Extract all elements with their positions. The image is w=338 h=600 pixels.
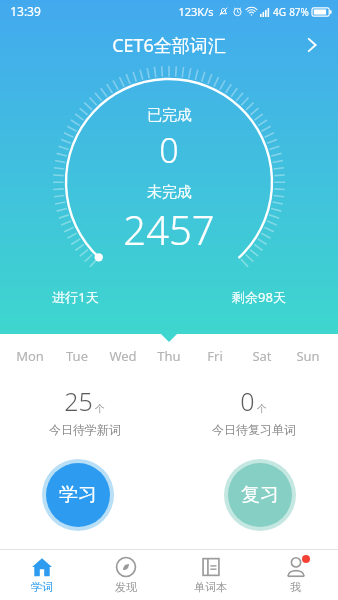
staticText: 123K/s	[178, 4, 214, 19]
button[interactable]: 25	[0, 384, 169, 437]
staticText: 个	[257, 402, 267, 415]
staticText: 单词本	[194, 580, 227, 594]
staticText: Sat	[252, 347, 272, 365]
button[interactable]: Fri	[195, 347, 235, 365]
button[interactable]: 复习	[224, 459, 296, 531]
button[interactable]: 学词	[0, 550, 84, 600]
staticText: Fri	[207, 347, 223, 365]
button[interactable]: CET6全部词汇	[0, 22, 338, 68]
staticText: 25	[64, 384, 93, 418]
button[interactable]: 发现	[84, 550, 168, 600]
staticText: 个	[95, 402, 105, 415]
staticText: 学习	[59, 483, 97, 507]
button[interactable]: 单词本	[168, 550, 253, 600]
staticText: 学词	[31, 580, 53, 594]
staticText: 复习	[241, 483, 279, 507]
button[interactable]: 0	[169, 384, 338, 437]
button[interactable]: Sun	[288, 347, 328, 365]
other: Open word list	[300, 33, 324, 57]
staticText: CET6全部词汇	[112, 33, 226, 58]
staticText: 发现	[115, 580, 137, 594]
staticText: Thu	[157, 347, 181, 365]
staticText: 0	[159, 127, 179, 173]
staticText: 进行1天	[52, 288, 99, 306]
button[interactable]: Tue	[57, 347, 97, 365]
staticText: Tue	[66, 347, 88, 365]
staticText: 13:39	[10, 3, 41, 19]
staticText: 2457	[123, 202, 215, 256]
button[interactable]: Mon	[10, 347, 50, 365]
staticText: 4G	[273, 5, 286, 19]
staticText: Wed	[109, 347, 137, 365]
staticText: 已完成	[147, 106, 192, 125]
staticText: 87%	[289, 5, 309, 19]
staticText: 今日待复习单词	[212, 422, 296, 437]
staticText: 未完成	[147, 183, 192, 202]
staticText: 今日待学新词	[49, 422, 121, 437]
staticText: 剩余98天	[232, 288, 286, 306]
button[interactable]: Sat	[242, 347, 282, 365]
button[interactable]: Thu	[149, 347, 189, 365]
staticText: Mon	[16, 347, 44, 365]
button[interactable]: 我	[253, 550, 338, 600]
staticText: Sun	[296, 347, 320, 365]
staticText: 我	[290, 580, 301, 594]
button[interactable]: Wed	[103, 347, 143, 365]
button[interactable]: 学习	[42, 459, 114, 531]
staticText: 0	[240, 384, 255, 418]
